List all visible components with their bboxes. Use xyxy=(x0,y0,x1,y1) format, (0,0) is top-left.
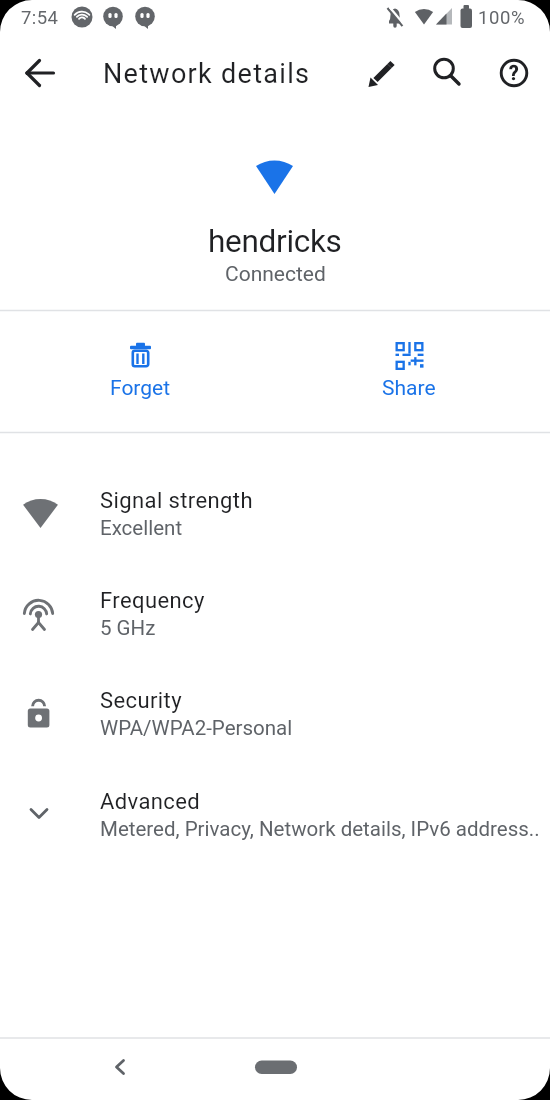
staticText: ? xyxy=(509,62,519,85)
staticText: Security xyxy=(100,688,182,714)
button[interactable] xyxy=(0,764,550,864)
staticText: WPA/WPA2-Personal xyxy=(100,716,293,740)
staticText: 7:54 xyxy=(21,7,59,29)
staticText: Metered, Privacy, Network details, IPv6 … xyxy=(100,817,550,841)
button[interactable] xyxy=(16,49,64,97)
staticText: Signal strength xyxy=(100,488,253,514)
button[interactable] xyxy=(0,564,550,664)
staticText: Frequency xyxy=(100,588,205,614)
staticText: Share xyxy=(382,376,436,401)
button[interactable] xyxy=(358,49,406,97)
staticText: 100% xyxy=(478,7,526,29)
button[interactable] xyxy=(422,49,470,97)
staticText: Connected xyxy=(225,262,326,287)
staticText: Advanced xyxy=(100,789,201,815)
staticText: hendricks xyxy=(208,223,342,260)
staticText: Excellent xyxy=(100,516,183,540)
button[interactable] xyxy=(90,332,190,404)
button[interactable] xyxy=(0,664,550,764)
staticText: Forget xyxy=(110,376,171,401)
button[interactable] xyxy=(96,1043,144,1091)
staticText: 5 GHz xyxy=(100,616,156,640)
button[interactable] xyxy=(0,464,550,564)
button[interactable] xyxy=(490,49,538,97)
button[interactable] xyxy=(359,332,459,404)
staticText: Network details xyxy=(103,58,311,90)
button[interactable] xyxy=(245,1051,309,1083)
